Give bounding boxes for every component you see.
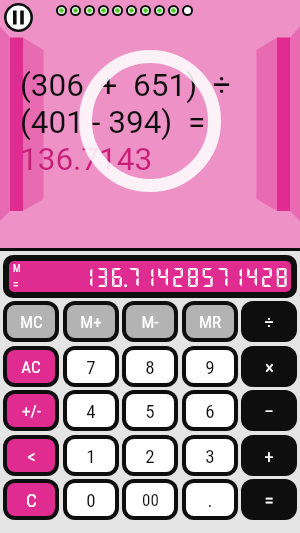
button[interactable]: C — [7, 483, 55, 516]
button[interactable]: AC — [7, 350, 55, 383]
button[interactable]: = — [245, 483, 293, 516]
staticText: M+ — [80, 312, 102, 332]
staticText: = — [13, 278, 19, 292]
staticText: + — [264, 445, 274, 467]
button[interactable]: 3 — [186, 439, 234, 472]
staticText: 7 — [86, 356, 96, 378]
button[interactable]: 8 — [126, 350, 174, 383]
staticText: × — [265, 356, 274, 378]
button[interactable]: MR — [186, 305, 234, 338]
staticText: M — [13, 263, 21, 275]
staticText: . — [207, 489, 213, 511]
staticText: MC — [20, 312, 43, 332]
staticText: ÷ — [264, 311, 274, 333]
staticText: 9 — [205, 356, 215, 378]
button[interactable]: 5 — [126, 394, 174, 427]
staticText: 1 — [86, 445, 96, 467]
button[interactable]: MC — [7, 305, 55, 338]
button[interactable]: M+ — [67, 305, 115, 338]
button[interactable]: × — [245, 350, 293, 383]
staticText: 3 — [205, 445, 215, 467]
button[interactable]: 00 — [126, 483, 174, 516]
button[interactable]: + — [245, 439, 293, 472]
button[interactable]: ÷ — [245, 305, 293, 338]
staticText: MR — [199, 312, 221, 332]
button[interactable]: 2 — [126, 439, 174, 472]
staticText: 00 — [142, 490, 159, 510]
staticText: 6 — [205, 400, 215, 422]
button[interactable]: M- — [126, 305, 174, 338]
button[interactable]: − — [245, 394, 293, 427]
staticText: C — [26, 489, 37, 511]
button[interactable]: . — [186, 483, 234, 516]
staticText: 2 — [145, 445, 155, 467]
staticText: 5 — [145, 400, 155, 422]
button[interactable]: 1 — [67, 439, 115, 472]
button[interactable]: +/- — [7, 394, 55, 427]
staticText: (306 + 651) ÷ — [20, 67, 231, 104]
staticText: (401 - 394) = — [20, 104, 206, 141]
button[interactable]: 6 — [186, 394, 234, 427]
staticText: M- — [141, 312, 159, 332]
button[interactable]: 9 — [186, 350, 234, 383]
staticText: 4 — [86, 400, 96, 422]
staticText: AC — [21, 357, 41, 377]
button[interactable]: < — [7, 439, 55, 472]
staticText: +/- — [22, 401, 41, 421]
staticText: − — [264, 400, 274, 422]
button[interactable]: 4 — [67, 394, 115, 427]
staticText: 8 — [145, 356, 155, 378]
button[interactable]: 0 — [67, 483, 115, 516]
staticText: 0 — [86, 489, 96, 511]
button[interactable]: 7 — [67, 350, 115, 383]
staticText: 136.71428571428 — [80, 265, 290, 289]
staticText: 136.7143 — [20, 141, 153, 178]
staticText: < — [27, 445, 36, 467]
button[interactable]: Pause — [3, 2, 34, 33]
staticText: = — [264, 489, 274, 511]
